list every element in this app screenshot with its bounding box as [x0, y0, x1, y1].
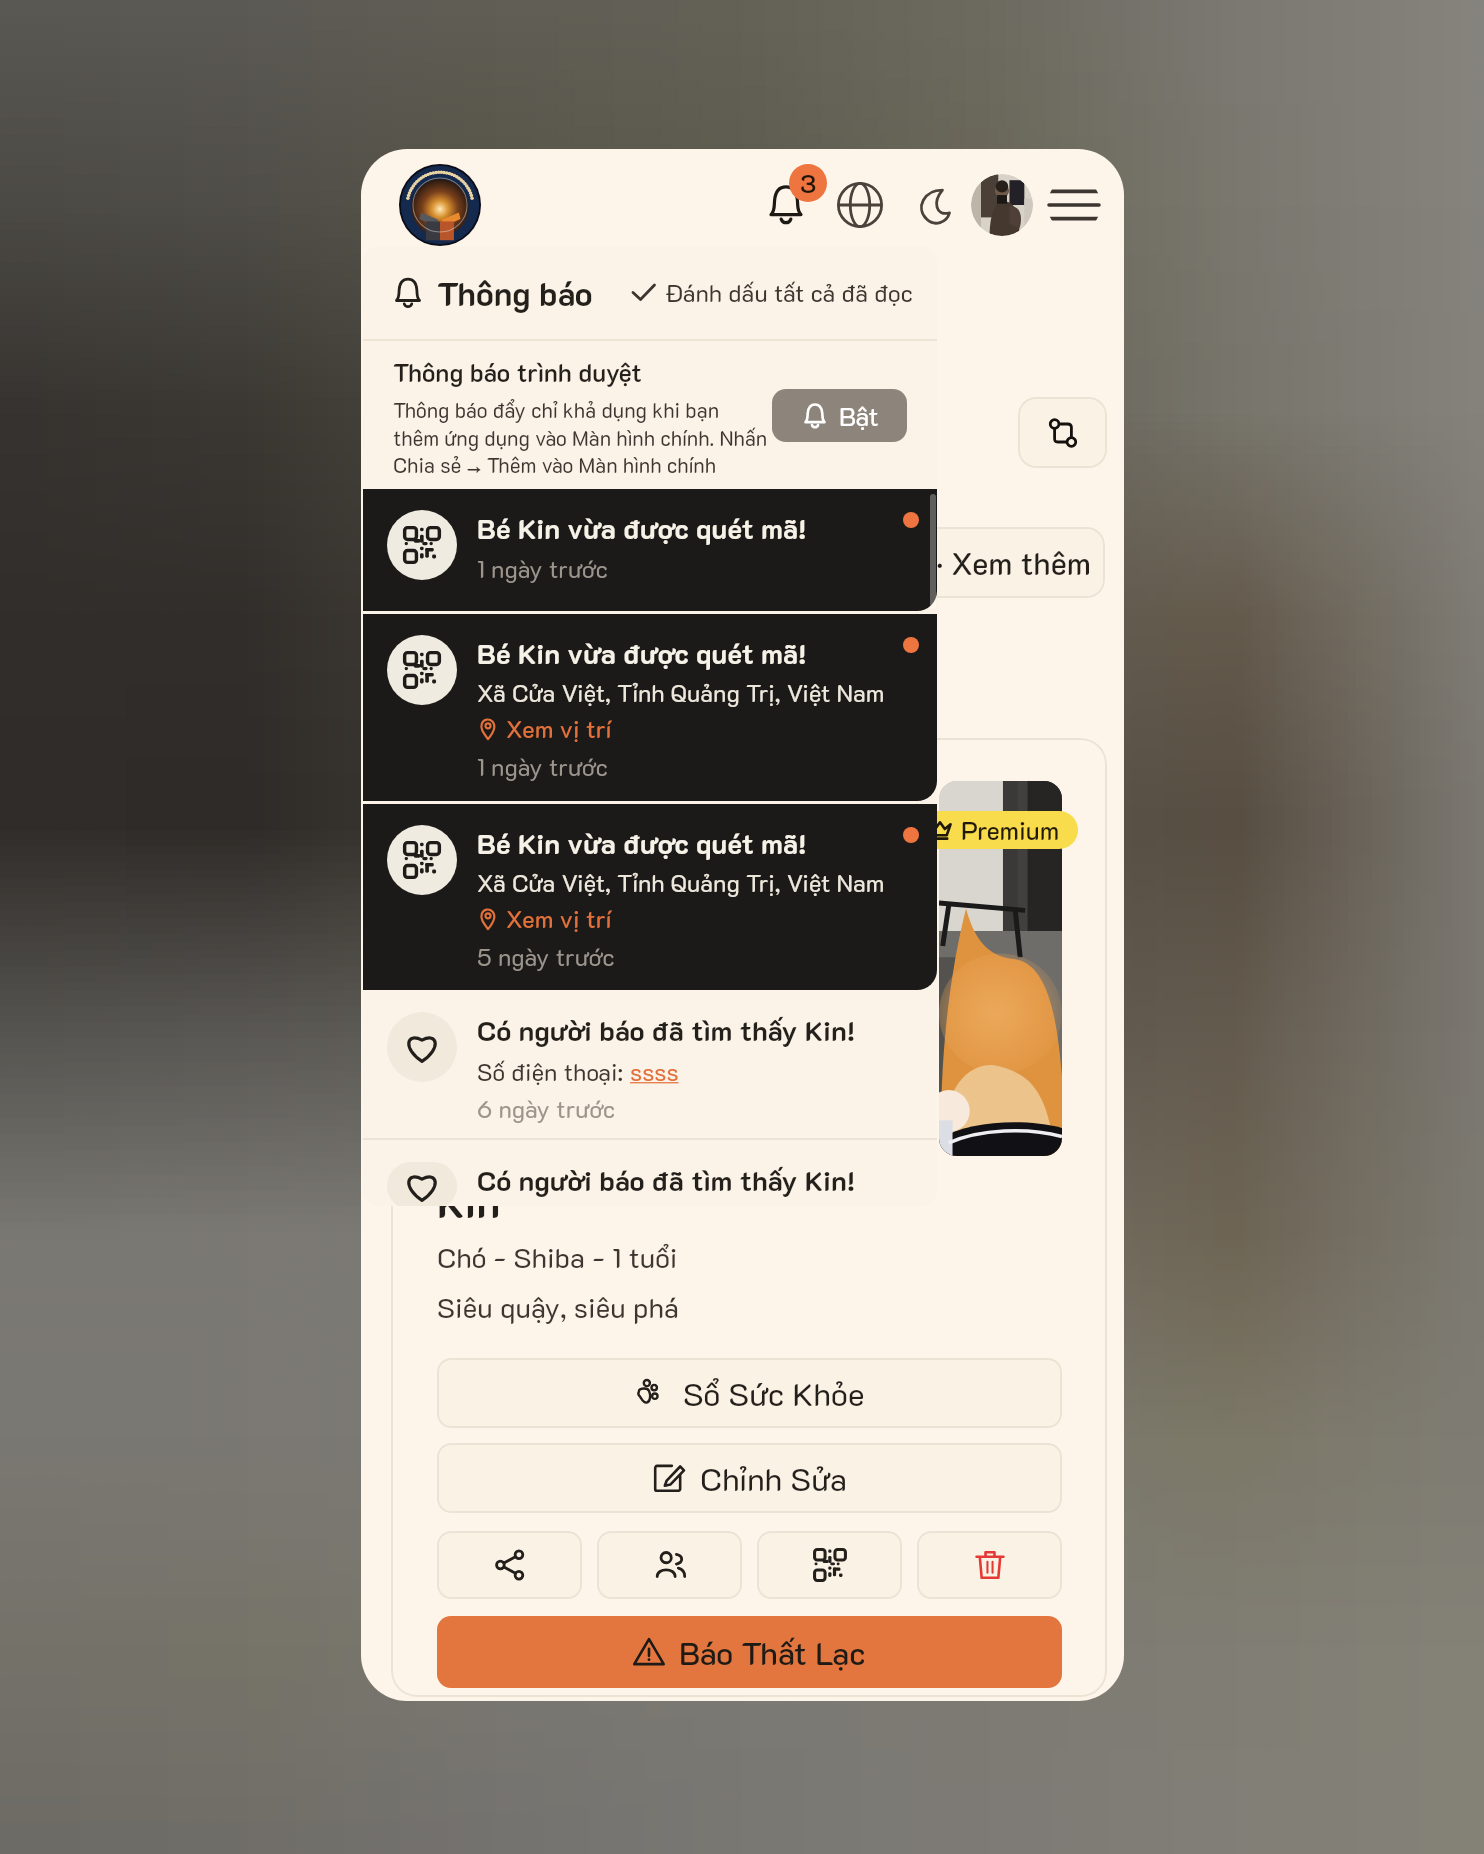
staticText: Bé Kin vừa được quét mã!	[477, 635, 807, 671]
button[interactable]: Compare	[1018, 397, 1107, 468]
button[interactable]: Language	[833, 178, 887, 232]
button[interactable]: Members	[597, 1531, 742, 1599]
button[interactable]: Bật	[772, 389, 907, 442]
button[interactable]: Đánh dấu tất cả đã đọc	[631, 277, 913, 308]
button[interactable]: Share	[437, 1531, 582, 1599]
staticText: Có người báo đã tìm thấy Kin!	[477, 1012, 856, 1048]
staticText: Thông báo	[437, 271, 593, 314]
staticText: Báo Thất Lạc	[679, 1631, 866, 1673]
staticText: ssss	[630, 1056, 679, 1087]
button[interactable]: Xem vị trí	[477, 903, 612, 934]
button[interactable]: Báo Thất Lạc	[437, 1616, 1062, 1688]
staticText: 1 ngày trước	[477, 553, 608, 584]
staticText: Siêu quậy, siêu phá	[437, 1289, 679, 1325]
button[interactable]: Menu	[1047, 178, 1101, 232]
button[interactable]: Bé Kin vừa được quét mã!	[363, 489, 937, 611]
button[interactable]: The Present home	[397, 162, 483, 248]
button[interactable]: Bé Kin vừa được quét mã!	[363, 614, 937, 801]
staticText: Chỉnh Sửa	[700, 1457, 847, 1499]
button[interactable]: QR code	[757, 1531, 902, 1599]
staticText: Xã Cửa Việt, Tỉnh Quảng Trị, Việt Nam	[477, 867, 885, 898]
button[interactable]: Sổ Sức Khỏe	[437, 1358, 1062, 1428]
staticText: Đánh dấu tất cả đã đọc	[665, 277, 913, 308]
button[interactable]: Bé Kin vừa được quét mã!	[363, 804, 937, 990]
staticText: Thêm bạn mới · Xem thêm	[735, 543, 1091, 583]
staticText: Có người báo đã tìm thấy Kin!	[477, 1162, 856, 1198]
button[interactable]: Xem vị trí	[477, 713, 612, 744]
staticText: Bật	[839, 399, 879, 433]
staticText: Số điện thoại:	[477, 1056, 630, 1087]
staticText: Sổ Sức Khỏe	[683, 1372, 865, 1414]
button[interactable]: Notifications	[757, 176, 815, 234]
staticText: Xem vị trí	[506, 713, 612, 744]
button[interactable]: Có người báo đã tìm thấy Kin!	[363, 990, 937, 1140]
staticText: 3	[800, 166, 817, 200]
staticText: 6 ngày trước	[477, 1093, 616, 1124]
button[interactable]: Profile	[971, 174, 1033, 236]
staticText: Kin	[437, 1174, 501, 1229]
staticText: Bé Kin vừa được quét mã!	[477, 825, 807, 861]
staticText: Xã Cửa Việt, Tỉnh Quảng Trị, Việt Nam	[477, 677, 885, 708]
button[interactable]: Có người báo đã tìm thấy Kin!	[363, 1140, 937, 1206]
staticText: 1 ngày trước	[477, 751, 608, 782]
staticText: Xem vị trí	[506, 903, 612, 934]
staticText: Chó - Shiba - 1 tuổi	[437, 1239, 678, 1275]
staticText: 5 ngày trước	[477, 941, 615, 972]
staticText: Thông báo đẩy chỉ khả dụng khi bạn thêm …	[393, 397, 768, 478]
staticText: Thông báo trình duyệt	[393, 356, 642, 388]
button[interactable]: Thêm bạn mới · Xem thêm	[391, 527, 1105, 598]
staticText: Bé Kin vừa được quét mã!	[477, 510, 807, 546]
button[interactable]: Chỉnh Sửa	[437, 1443, 1062, 1513]
button[interactable]: Delete	[917, 1531, 1062, 1599]
button[interactable]: Dark mode	[904, 178, 958, 232]
staticText: Premium	[961, 814, 1060, 846]
